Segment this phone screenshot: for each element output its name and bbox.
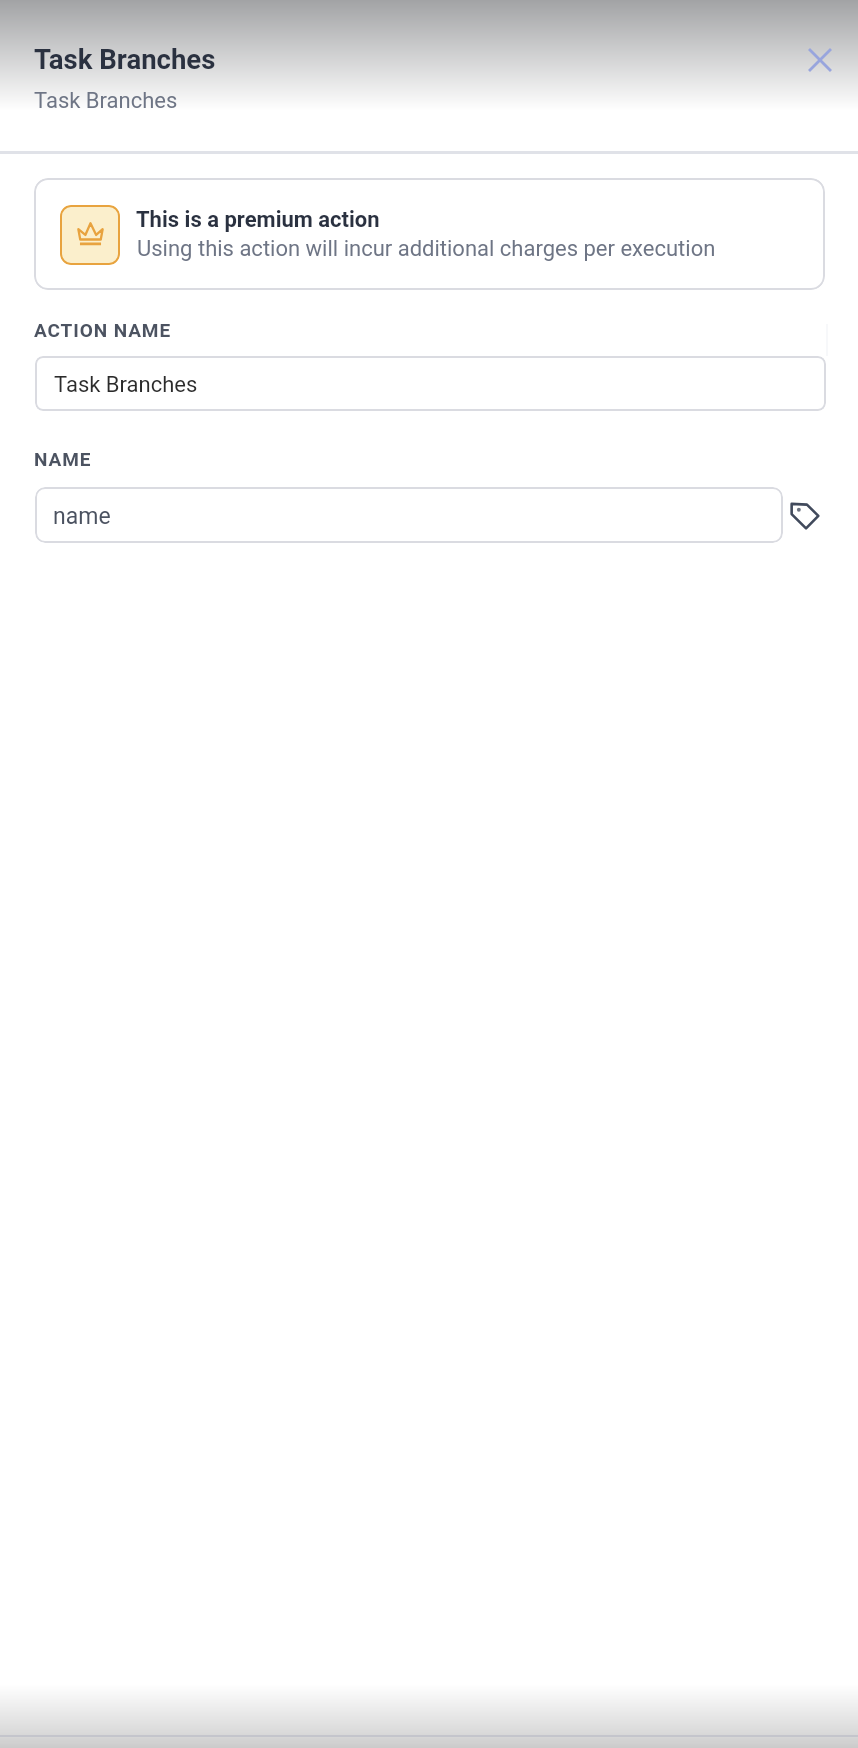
staticText: Using this action will incur additional … [137,236,716,262]
staticText: Task Branches [54,372,198,398]
staticText: name [53,503,111,530]
staticText: Task Branches [34,43,216,75]
staticText: NAME [34,448,92,470]
staticText: This is a premium action [136,207,380,233]
button[interactable]: This is a premium action [34,178,825,290]
staticText: Task Branches [34,88,178,114]
button[interactable]: Insert variable [776,487,833,544]
staticText: ACTION NAME [34,319,171,341]
button[interactable]: name [35,487,783,543]
button[interactable]: Close [787,27,853,93]
button[interactable]: Task Branches [35,356,826,411]
